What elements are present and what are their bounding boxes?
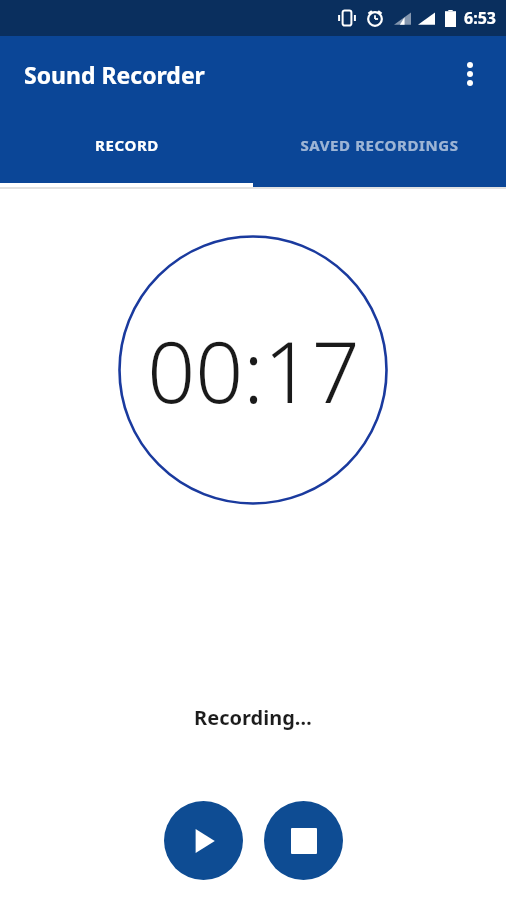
button[interactable]: Play [164, 801, 243, 880]
staticText: Recording… [194, 704, 312, 731]
button[interactable]: SAVED RECORDINGS [253, 112, 506, 187]
button[interactable]: Stop [264, 801, 343, 880]
staticText: 6:53 [464, 7, 496, 29]
staticText: 00:17 [147, 313, 360, 427]
button[interactable]: RECORD [0, 112, 253, 187]
staticText: Sound Recorder [24, 59, 205, 90]
button[interactable]: More options [448, 52, 492, 96]
staticText: SAVED RECORDINGS [300, 135, 459, 155]
staticText: RECORD [95, 135, 159, 155]
